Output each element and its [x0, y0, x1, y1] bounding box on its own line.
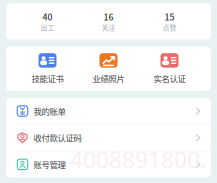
- button[interactable]: 技能证书: [17, 53, 78, 84]
- button[interactable]: 收付款认证码: [6, 125, 211, 151]
- staticText: 40: [42, 10, 52, 23]
- staticText: 账号管理: [33, 158, 65, 170]
- staticText: 我的账单: [33, 105, 65, 117]
- button[interactable]: 我的账单: [6, 98, 211, 124]
- staticText: 收付款认证码: [33, 132, 81, 144]
- button[interactable]: 账号管理: [6, 151, 211, 177]
- staticText: 业绩照片: [92, 72, 124, 84]
- staticText: 16: [103, 10, 113, 23]
- staticText: 实名认证: [153, 72, 185, 84]
- staticText: 15: [164, 10, 174, 23]
- staticText: 4008891800.: [70, 144, 206, 174]
- staticText: 技能证书: [31, 72, 63, 84]
- staticText: 关注: [101, 22, 115, 32]
- button[interactable]: 业绩照片: [78, 53, 139, 84]
- staticText: 出工: [40, 22, 54, 32]
- button[interactable]: 实名认证: [139, 53, 200, 84]
- staticText: 点赞: [162, 22, 176, 32]
